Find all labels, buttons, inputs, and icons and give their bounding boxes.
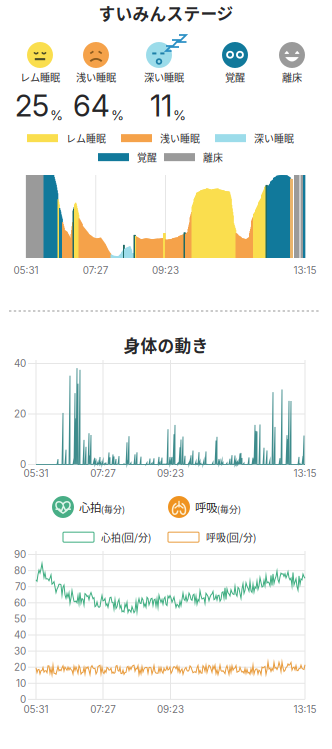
staticText: 離床 [203,150,223,164]
staticText: 呼吸 [195,499,217,515]
staticText: % [50,107,63,123]
staticText: すいみんステージ [98,1,233,25]
staticText: 離床 [282,70,302,84]
staticText: 呼吸(回/分) [206,530,256,544]
staticText: % [173,107,186,123]
staticText: 25 [15,88,49,123]
staticText: 09:23 [157,703,184,715]
staticText: 深い睡眠 [144,70,184,84]
staticText: 07:27 [90,703,116,715]
staticText: 40 [14,357,26,369]
staticText: (毎分) [217,503,241,515]
staticText: 20 [14,408,26,420]
staticText: 09:23 [157,467,184,479]
staticText: 0 [20,458,26,470]
staticText: 0 [20,693,26,705]
staticText: 80 [14,565,26,576]
button[interactable]: 心拍 [52,496,125,518]
staticText: 05:31 [13,264,38,276]
staticText: 20 [14,661,26,673]
staticText: 07:27 [90,467,116,479]
staticText: レム睡眠 [20,70,60,84]
staticText: 40 [14,629,26,641]
staticText: 70 [15,581,26,593]
staticText: 心拍 [79,499,101,515]
staticText: % [111,107,124,123]
staticText: 身体の動き [123,333,208,357]
staticText: 64 [73,88,110,123]
staticText: 10 [16,677,26,689]
staticText: 90 [14,548,26,560]
staticText: (毎分) [101,503,125,515]
staticText: 60 [14,597,26,609]
staticText: 13:15 [293,264,316,276]
staticText: 覚醒 [225,70,245,84]
staticText: 11 [150,88,172,123]
staticText: 13:15 [293,703,316,715]
staticText: 浅い睡眠 [76,70,116,84]
staticText: レム睡眠 [66,131,106,145]
staticText: 30 [14,645,26,657]
staticText: 09:23 [152,264,179,276]
staticText: 13:15 [293,467,316,479]
staticText: 05:31 [23,703,48,715]
staticText: 心拍(回/分) [101,530,151,544]
staticText: 浅い睡眠 [160,131,200,145]
staticText: 深い睡眠 [254,131,294,145]
button[interactable]: 呼吸 [168,496,241,518]
staticText: 覚醒 [137,150,157,164]
staticText: 50 [14,613,26,625]
staticText: 05:31 [23,467,48,479]
staticText: 07:27 [83,264,109,276]
